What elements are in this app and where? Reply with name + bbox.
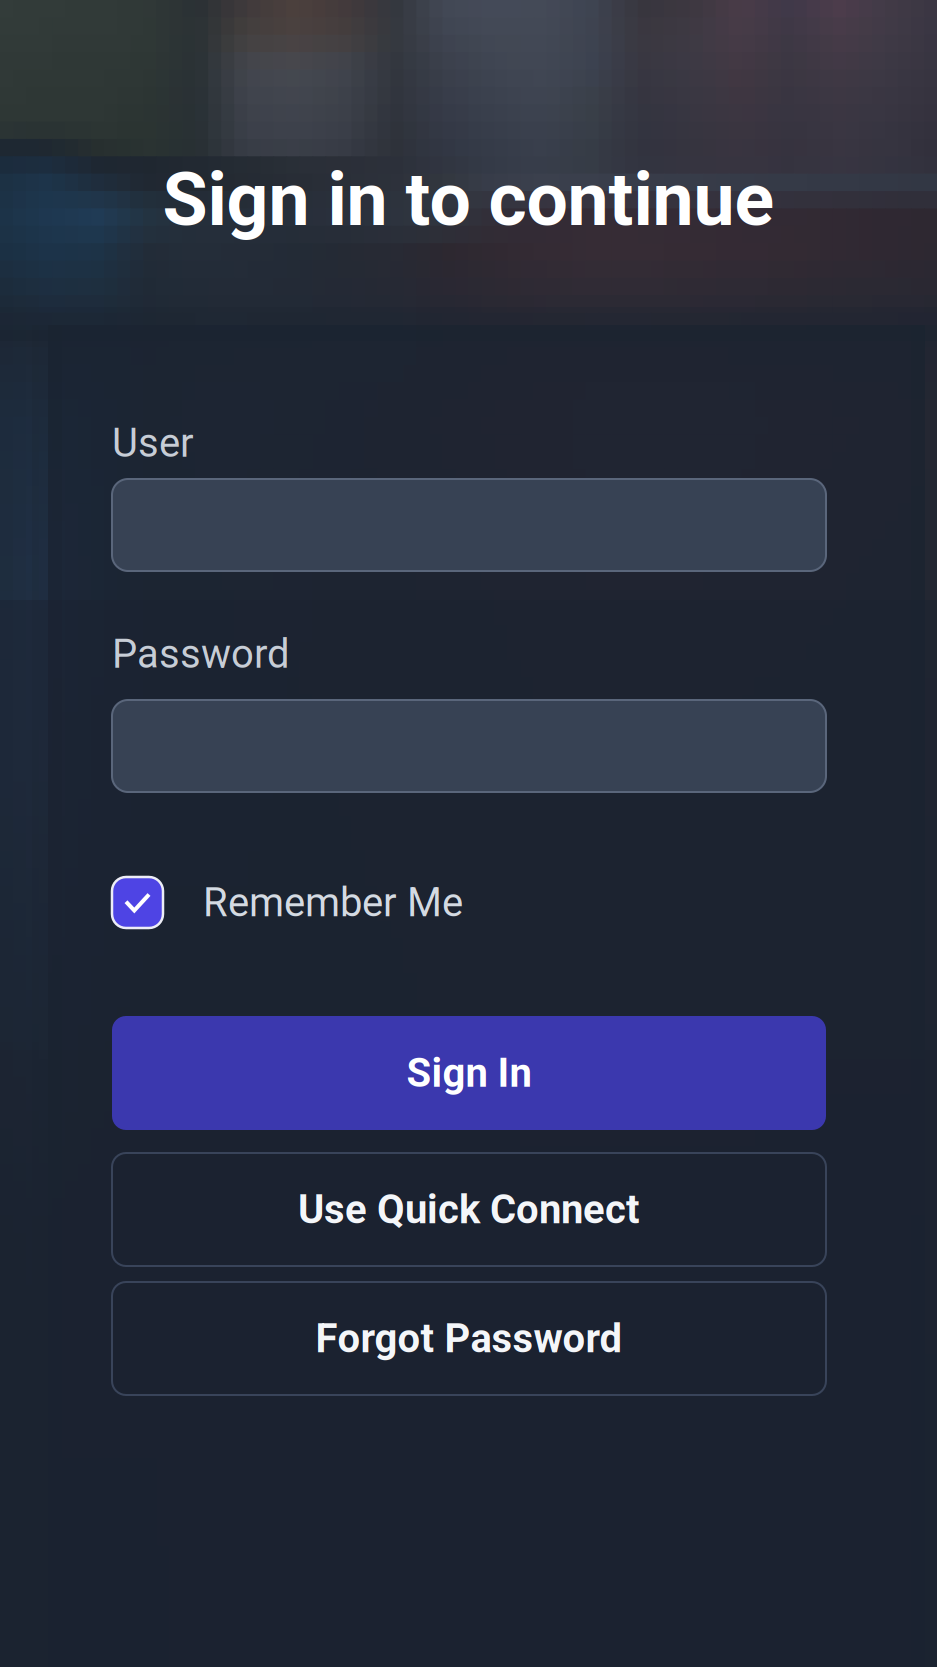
button[interactable]: Use Quick Connect	[112, 1153, 826, 1266]
button[interactable]: Forgot Password	[112, 1282, 826, 1395]
staticText: Sign in to continue	[162, 157, 774, 243]
staticText: Remember Me	[203, 879, 463, 926]
staticText: Password	[112, 631, 290, 677]
button[interactable]: Remember Me	[112, 877, 826, 928]
staticText: User	[112, 420, 194, 466]
staticText: Forgot Password	[315, 1315, 622, 1362]
staticText: Sign In	[406, 1050, 531, 1096]
staticText: Use Quick Connect	[298, 1186, 640, 1233]
button[interactable]: Sign In	[112, 1016, 826, 1130]
